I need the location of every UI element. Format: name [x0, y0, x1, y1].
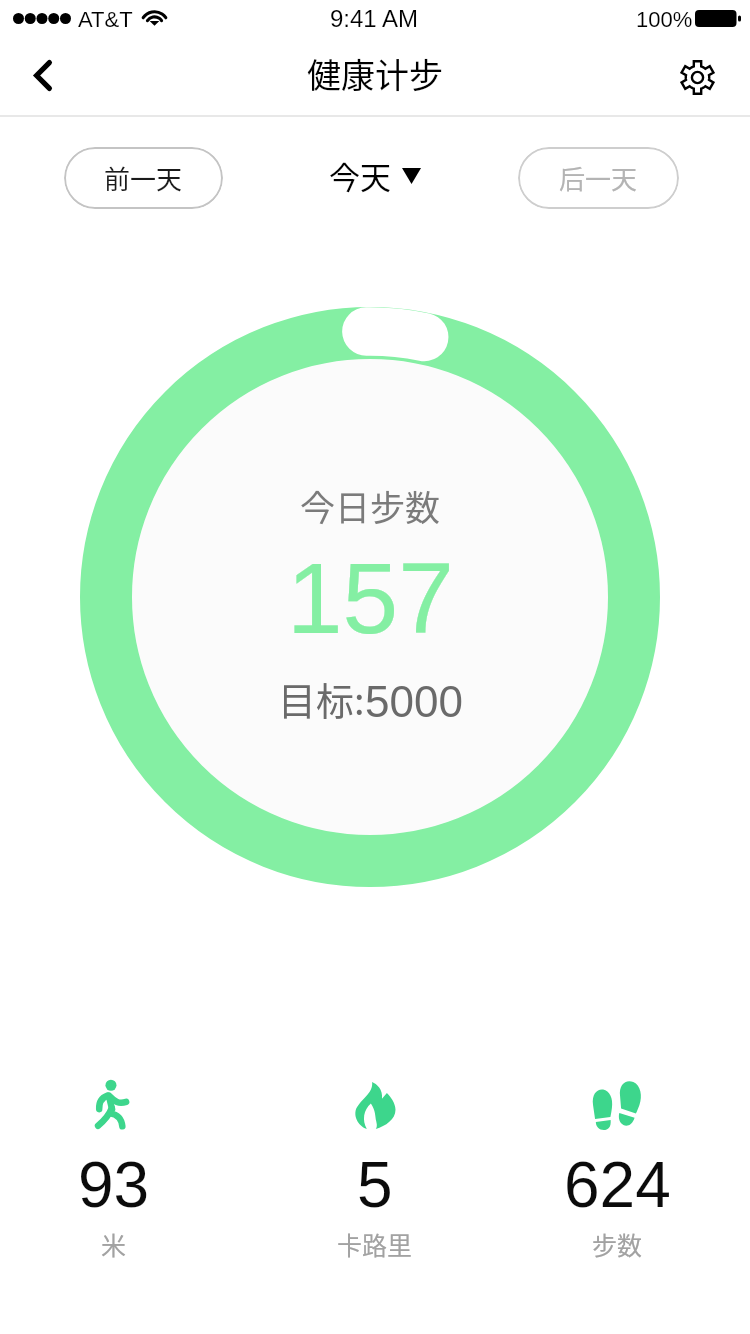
button[interactable]: 后一天 [518, 147, 679, 209]
button[interactable]: 93 [14, 1078, 214, 1262]
staticText: 5 [357, 1149, 393, 1221]
staticText: 624 [564, 1149, 671, 1221]
staticText: 后一天 [559, 159, 638, 197]
staticText: 健康计步 [307, 49, 443, 98]
button[interactable]: 5 [275, 1078, 475, 1262]
staticText: 卡路里 [337, 1226, 413, 1262]
staticText: 157 [287, 542, 454, 654]
staticText: 今天 [329, 153, 391, 198]
staticText: 步数 [592, 1226, 643, 1262]
button[interactable]: 前一天 [64, 147, 223, 209]
button[interactable]: 624 [517, 1078, 717, 1262]
button[interactable]: Back [15, 47, 71, 103]
staticText: 5000 [365, 677, 463, 726]
staticText: 9:41 AM [330, 5, 419, 32]
staticText: 93 [78, 1149, 150, 1221]
staticText: 前一天 [104, 159, 183, 197]
staticText: 100% [636, 7, 693, 32]
staticText: AT&T [78, 7, 133, 32]
button[interactable]: 今天 [329, 153, 421, 198]
staticText: 米 [101, 1226, 127, 1262]
staticText: 今日步数 [300, 480, 441, 531]
staticText: 目标: [278, 671, 365, 726]
button[interactable]: Settings [669, 49, 725, 105]
